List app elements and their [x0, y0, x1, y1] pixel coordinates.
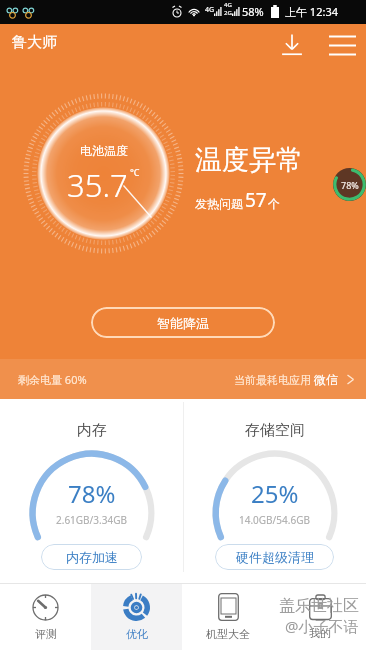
staticText: 35.7 — [67, 164, 128, 206]
button[interactable]: 机型大全 — [182, 584, 274, 650]
staticText: 78% — [68, 477, 116, 510]
button[interactable]: Download — [274, 27, 310, 63]
staticText: 机型大全 — [206, 627, 250, 641]
button[interactable]: 优化 — [91, 584, 182, 650]
staticText: 当前最耗电应用 — [234, 372, 314, 387]
staticText: 微信 — [314, 372, 338, 387]
staticText: 57 — [245, 187, 267, 213]
staticText: 14.0GB/54.6GB — [239, 513, 310, 527]
staticText: 温度异常 — [195, 143, 303, 177]
staticText: 58% — [242, 4, 264, 19]
staticText: 内存 — [77, 421, 107, 440]
staticText: @小子不语 — [285, 616, 359, 636]
button[interactable]: Menu — [323, 27, 361, 64]
staticText: 4G — [224, 1, 232, 9]
staticText: 78% — [341, 179, 359, 191]
staticText: 发热问题 — [195, 196, 243, 211]
staticText: 电池温度 — [80, 143, 128, 158]
staticText: °C — [130, 166, 140, 178]
staticText: 内存加速 — [66, 549, 118, 565]
button[interactable]: 评测 — [0, 584, 91, 650]
staticText: 2.61GB/3.34GB — [56, 513, 127, 527]
staticText: 我的 — [309, 626, 331, 640]
button[interactable]: 硬件超级清理 — [215, 544, 334, 570]
staticText: 25% — [251, 477, 299, 510]
staticText: 4G — [205, 5, 215, 15]
button[interactable]: 我的 — [274, 584, 366, 650]
staticText: 2G — [224, 9, 232, 17]
staticText: 上午 12:34 — [285, 4, 338, 19]
button[interactable]: 智能降温 — [91, 307, 275, 338]
staticText: 个 — [268, 196, 280, 211]
staticText: 鲁大师 — [12, 33, 57, 52]
staticText: 优化 — [126, 627, 148, 641]
staticText: 硬件超级清理 — [236, 549, 314, 565]
button[interactable]: Battery level 78 percent — [333, 168, 366, 201]
staticText: 评测 — [35, 627, 57, 641]
button[interactable]: 内存加速 — [41, 544, 142, 570]
staticText: 存储空间 — [245, 421, 305, 440]
button[interactable]: 剩余电量 60% — [0, 359, 366, 399]
staticText: 智能降温 — [157, 315, 209, 331]
staticText: 盖乐世社区 — [279, 596, 359, 616]
staticText: 剩余电量 60% — [18, 372, 87, 387]
